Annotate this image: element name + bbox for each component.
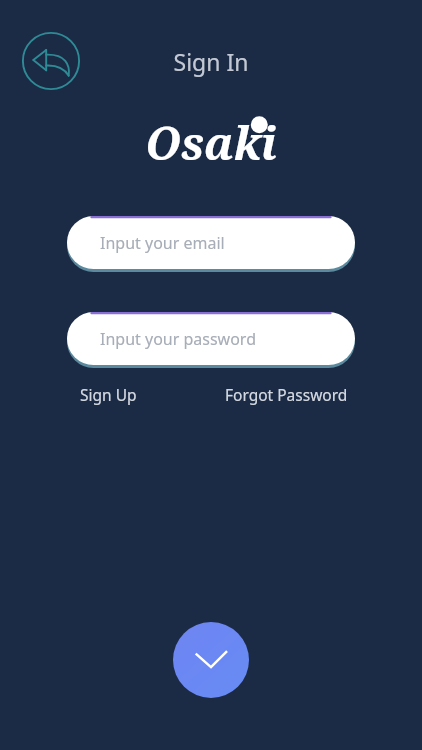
staticText: Sign Up bbox=[80, 384, 137, 405]
staticText: Input your email bbox=[100, 232, 225, 254]
button[interactable]: Input your password bbox=[67, 312, 355, 365]
staticText: Forgot Password bbox=[225, 384, 348, 405]
button[interactable]: Back bbox=[21, 31, 81, 91]
staticText: Sign In bbox=[0, 46, 422, 77]
button[interactable]: Submit bbox=[173, 622, 249, 698]
staticText: Input your password bbox=[100, 328, 257, 350]
button[interactable]: Sign Up bbox=[78, 382, 139, 407]
button[interactable]: Forgot Password bbox=[223, 382, 350, 407]
button[interactable]: Input your email bbox=[67, 216, 355, 269]
staticText: Osaki bbox=[145, 112, 277, 173]
